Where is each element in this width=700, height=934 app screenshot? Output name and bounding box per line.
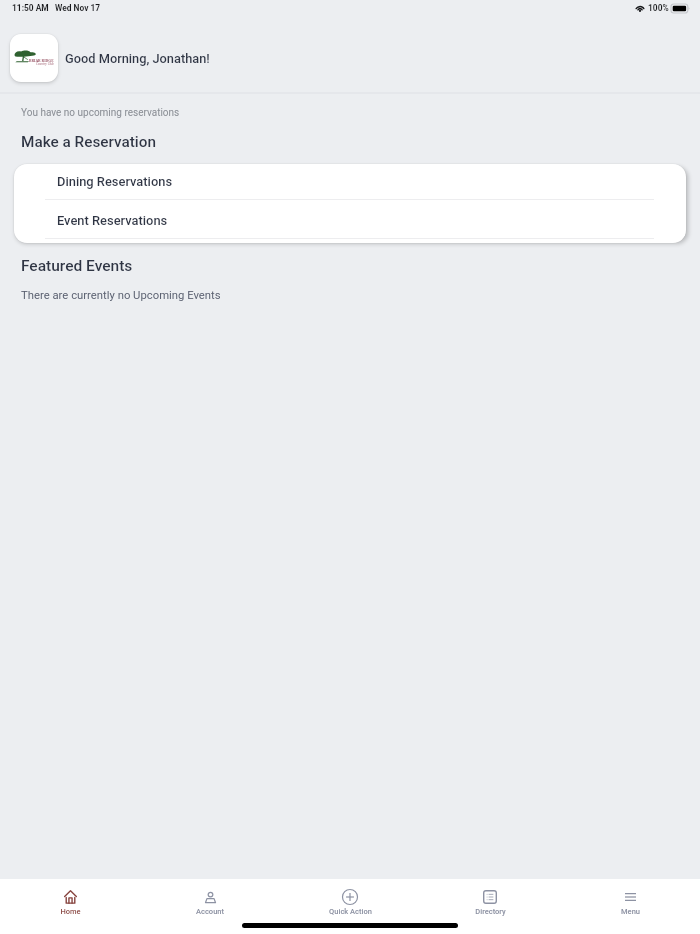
button[interactable]: Dining Reservations: [14, 164, 686, 199]
button[interactable]: Event Reservations: [14, 200, 686, 238]
staticText: Dining Reservations: [57, 174, 173, 189]
staticText: BRIAR RIDGE: [29, 58, 54, 63]
button[interactable]: Quick Action: [280, 879, 420, 934]
other: Account: [205, 892, 216, 903]
button[interactable]: Briar Ridge Country Club: [10, 34, 58, 82]
staticText: Featured Events: [21, 257, 133, 275]
staticText: Directory: [475, 907, 506, 916]
button[interactable]: Home: [0, 879, 140, 934]
staticText: 100%: [648, 3, 669, 13]
button[interactable]: Account: [140, 879, 280, 934]
other: Wi-Fi: [635, 4, 645, 12]
staticText: There are currently no Upcoming Events: [21, 289, 221, 302]
staticText: Event Reservations: [57, 213, 168, 228]
staticText: Account: [196, 907, 224, 916]
staticText: Good Morning, Jonathan!: [65, 51, 210, 66]
other: Menu: [625, 893, 636, 901]
button[interactable]: Menu: [560, 879, 700, 934]
other: Directory: [483, 890, 497, 904]
staticText: 11:50 AM: [12, 3, 49, 13]
other: Quick Action: [342, 889, 358, 905]
other: Home: [64, 890, 77, 904]
staticText: Menu: [621, 907, 640, 916]
button[interactable]: Directory: [420, 879, 560, 934]
staticText: Quick Action: [329, 907, 372, 916]
staticText: Home: [60, 907, 81, 916]
staticText: Make a Reservation: [21, 133, 156, 151]
staticText: Country Club: [36, 62, 54, 66]
staticText: You have no upcoming reservations: [21, 107, 180, 119]
staticText: Wed Nov 17: [55, 3, 101, 13]
